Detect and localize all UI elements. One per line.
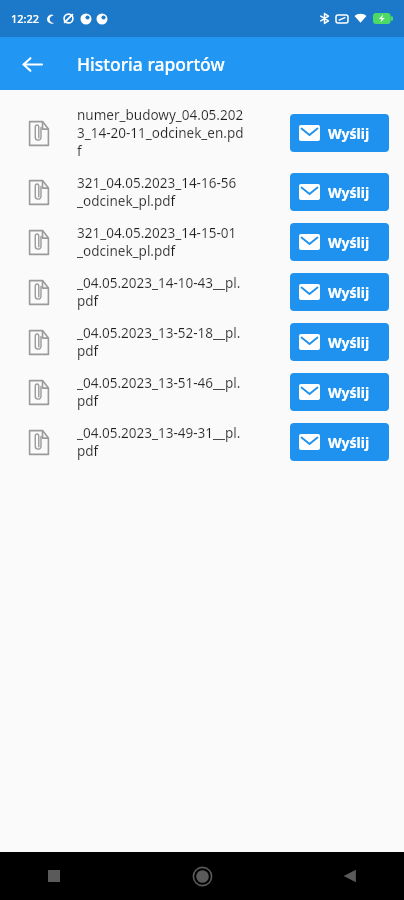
staticText: _odcinek_pl.pdf <box>77 192 176 210</box>
staticText: _04.05.2023_13-49-31__pl. <box>77 424 241 442</box>
staticText: pdf <box>77 392 99 410</box>
staticText: _04.05.2023_13-51-46__pl. <box>77 374 241 392</box>
staticText: 321_04.05.2023_14-16-56 <box>77 174 237 192</box>
button[interactable]: _04.05.2023_13-49-31__pl. <box>0 417 404 467</box>
staticText: pdf <box>77 342 99 360</box>
staticText: _04.05.2023_14-10-43__pl. <box>77 274 241 292</box>
staticText: _04.05.2023_13-52-18__pl. <box>77 324 241 342</box>
button[interactable]: Wyślij <box>290 273 389 311</box>
staticText: Wyślij <box>328 183 370 202</box>
button[interactable]: Wyślij <box>290 223 389 261</box>
staticText: Wyślij <box>328 233 370 252</box>
button[interactable]: Home <box>174 852 230 900</box>
button[interactable]: Wyślij <box>290 323 389 361</box>
button[interactable]: Recent apps <box>26 852 82 900</box>
button[interactable]: numer_budowy_04.05.202 <box>0 99 404 167</box>
staticText: Wyślij <box>328 283 370 302</box>
button[interactable]: Wyślij <box>290 114 389 152</box>
staticText: 3_14-20-11_odcinek_en.pd <box>77 124 244 142</box>
staticText: pdf <box>77 292 99 310</box>
button[interactable]: _04.05.2023_13-51-46__pl. <box>0 367 404 417</box>
staticText: Historia raportów <box>77 52 225 76</box>
staticText: _odcinek_pl.pdf <box>77 242 176 260</box>
button[interactable]: 321_04.05.2023_14-15-01 <box>0 217 404 267</box>
button[interactable]: _04.05.2023_13-52-18__pl. <box>0 317 404 367</box>
staticText: numer_budowy_04.05.202 <box>77 106 244 124</box>
button[interactable]: Back <box>322 852 378 900</box>
staticText: Wyślij <box>328 333 370 352</box>
button[interactable]: _04.05.2023_14-10-43__pl. <box>0 267 404 317</box>
staticText: Wyślij <box>328 383 370 402</box>
button[interactable]: 321_04.05.2023_14-16-56 <box>0 167 404 217</box>
staticText: 321_04.05.2023_14-15-01 <box>77 224 237 242</box>
staticText: 12:22 <box>11 11 40 26</box>
staticText: f <box>77 142 82 160</box>
button[interactable]: Wyślij <box>290 373 389 411</box>
button[interactable]: Back <box>10 42 54 86</box>
staticText: Wyślij <box>328 433 370 452</box>
button[interactable]: Wyślij <box>290 423 389 461</box>
staticText: pdf <box>77 442 99 460</box>
button[interactable]: Wyślij <box>290 173 389 211</box>
staticText: Wyślij <box>328 124 370 143</box>
